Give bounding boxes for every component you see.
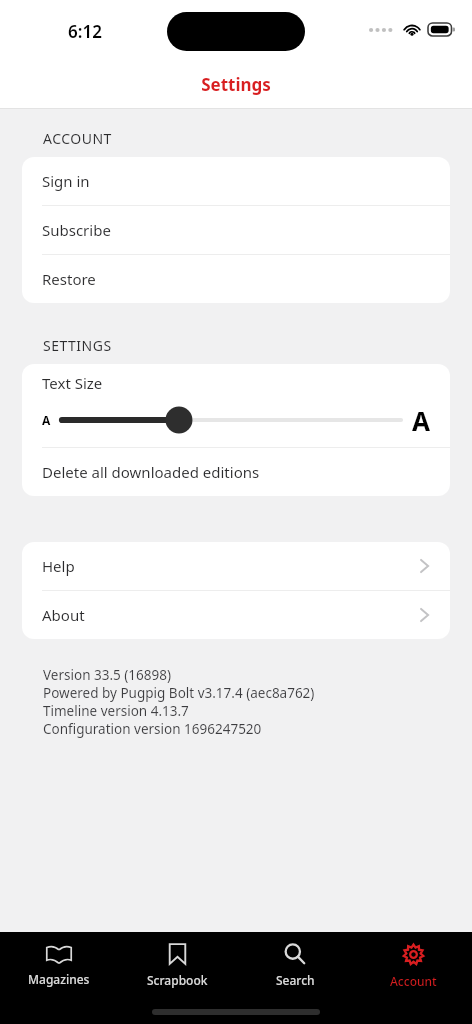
staticText: Version 33.5 (16898) (43, 666, 171, 684)
staticText: Subscribe (42, 220, 111, 240)
staticText: Powered by Pugpig Bolt v3.17.4 (aec8a762… (43, 684, 315, 702)
staticText: SETTINGS (43, 336, 112, 355)
button[interactable]: Search (236, 940, 354, 988)
staticText: Sign in (42, 171, 90, 191)
staticText: Magazines (28, 971, 90, 987)
button[interactable]: Text size slider (62, 403, 401, 437)
button[interactable]: Restore (22, 255, 450, 303)
button[interactable]: Subscribe (22, 206, 450, 254)
staticText: About (42, 605, 420, 625)
button[interactable]: Magazines (0, 942, 118, 987)
staticText: Help (42, 556, 420, 576)
staticText: Configuration version 1696247520 (43, 720, 262, 738)
staticText: A (42, 412, 51, 428)
staticText: ACCOUNT (43, 129, 112, 148)
staticText: Scrapbook (147, 972, 208, 988)
button[interactable]: Account (354, 940, 472, 989)
staticText: Search (276, 972, 315, 988)
staticText: Text Size (42, 373, 103, 393)
staticText: A (412, 403, 430, 437)
staticText: Restore (42, 269, 96, 289)
button[interactable]: Scrapbook (118, 940, 236, 988)
button[interactable]: About (22, 591, 450, 639)
button[interactable]: Help (22, 542, 450, 590)
staticText: 6:12 (68, 20, 102, 43)
staticText: Settings (201, 73, 271, 96)
button[interactable]: Delete all downloaded editions (22, 448, 450, 496)
staticText: Timeline version 4.13.7 (43, 702, 189, 720)
staticText: Account (390, 973, 437, 989)
button[interactable]: Sign in (22, 157, 450, 205)
staticText: Delete all downloaded editions (42, 462, 260, 482)
